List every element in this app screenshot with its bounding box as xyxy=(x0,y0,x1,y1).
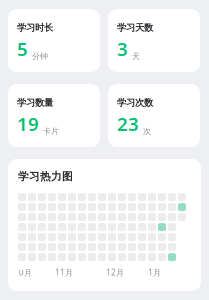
staticText: 卡片 xyxy=(43,126,59,136)
staticText: 学习热力图 xyxy=(18,170,73,183)
staticText: 天 xyxy=(132,51,140,61)
staticText: 学习时长 xyxy=(17,22,53,33)
staticText: 5 xyxy=(17,36,28,61)
button[interactable]: 学习时长 xyxy=(8,9,100,72)
staticText: 学习次数 xyxy=(117,97,153,108)
staticText: 23 xyxy=(117,111,139,136)
staticText: 学习数量 xyxy=(17,97,53,108)
staticText: 次 xyxy=(143,126,151,136)
staticText: 12月 xyxy=(106,267,124,278)
staticText: 11月 xyxy=(55,267,73,278)
staticText: 10月 xyxy=(14,267,32,278)
staticText: 分钟 xyxy=(32,51,48,61)
staticText: 学习天数 xyxy=(117,22,153,33)
button[interactable]: 学习数量 xyxy=(8,84,100,147)
staticText: 1月 xyxy=(148,267,161,278)
button[interactable]: 学习次数 xyxy=(108,84,200,147)
button[interactable]: 学习天数 xyxy=(108,9,200,72)
staticText: 19 xyxy=(17,111,39,136)
staticText: 3 xyxy=(117,36,128,61)
